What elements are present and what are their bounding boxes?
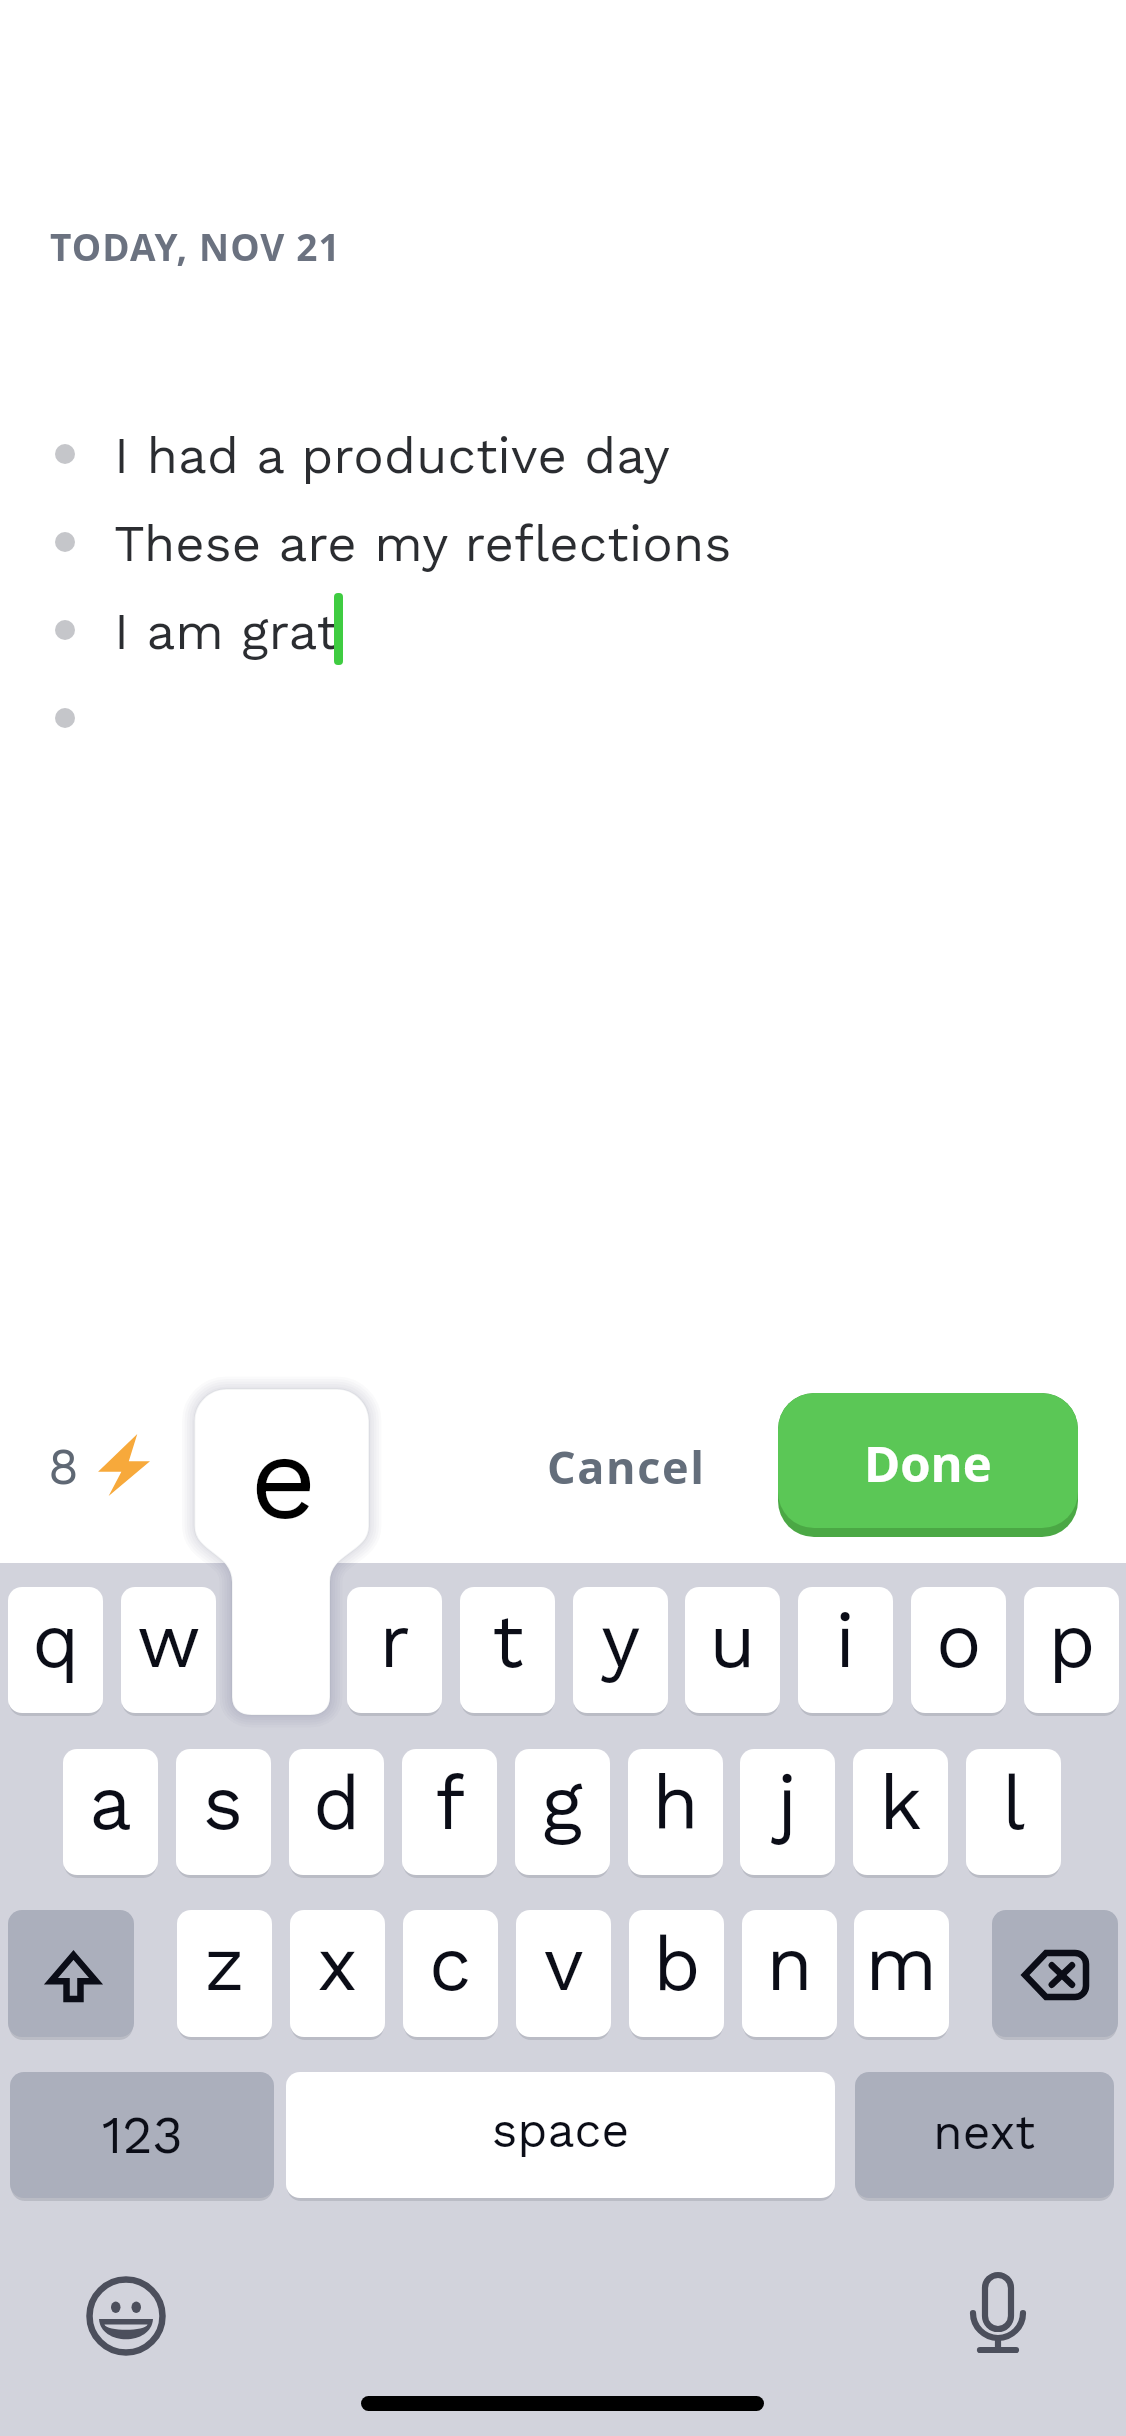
staticText: d — [313, 1758, 361, 1847]
staticText: 8 — [48, 1437, 79, 1496]
button[interactable]: v — [516, 1910, 611, 2037]
staticText: b — [653, 1919, 701, 2008]
other: Shift — [51, 1955, 96, 1999]
staticText: x — [317, 1919, 358, 2008]
button[interactable]: l — [966, 1749, 1061, 1875]
button[interactable]: next — [855, 2072, 1114, 2198]
other: Backspace — [1025, 1953, 1086, 1997]
staticText: t — [492, 1596, 524, 1685]
button[interactable]: Emoji — [66, 2256, 185, 2375]
staticText: f — [435, 1758, 465, 1847]
button[interactable]: c — [403, 1910, 498, 2037]
staticText: q — [32, 1596, 80, 1685]
button[interactable]: Cancel — [535, 1422, 718, 1511]
staticText: I am grat — [114, 602, 338, 662]
button[interactable]: w — [121, 1587, 216, 1713]
staticText: n — [766, 1919, 814, 2008]
button[interactable]: k — [853, 1749, 948, 1875]
button[interactable]: o — [911, 1587, 1006, 1713]
button[interactable]: space — [286, 2072, 835, 2198]
staticText: l — [1002, 1758, 1026, 1847]
button[interactable]: x — [290, 1910, 385, 2037]
button[interactable]: s — [176, 1749, 271, 1875]
button[interactable]: t — [460, 1587, 555, 1713]
button[interactable]: r — [347, 1587, 442, 1713]
staticText: a — [89, 1758, 133, 1847]
button[interactable]: g — [515, 1749, 610, 1875]
button[interactable]: d — [289, 1749, 384, 1875]
staticText: h — [652, 1758, 700, 1847]
button[interactable]: b — [629, 1910, 724, 2037]
staticText: p — [1048, 1596, 1096, 1685]
button[interactable]: u — [685, 1587, 780, 1713]
staticText: Cancel — [547, 1436, 706, 1497]
staticText: y — [601, 1596, 641, 1685]
button[interactable]: a — [63, 1749, 158, 1875]
staticText: u — [709, 1596, 756, 1685]
button[interactable]: y — [573, 1587, 668, 1713]
button[interactable]: f — [402, 1749, 497, 1875]
button[interactable]: h — [628, 1749, 723, 1875]
staticText: i — [835, 1596, 856, 1685]
staticText: c — [429, 1919, 472, 2008]
button[interactable]: q — [8, 1587, 103, 1713]
button[interactable]: Done — [778, 1393, 1078, 1537]
staticText: m — [865, 1919, 938, 2008]
staticText: v — [544, 1919, 584, 2008]
button[interactable]: Voice input — [939, 2256, 1058, 2375]
staticText: I had a productive day — [114, 426, 670, 486]
staticText: 123 — [102, 2105, 183, 2166]
button[interactable]: p — [1024, 1587, 1119, 1713]
staticText: z — [204, 1919, 245, 2008]
button[interactable]: i — [798, 1587, 893, 1713]
staticText: o — [936, 1596, 982, 1685]
staticText: TODAY, NOV 21 — [50, 221, 341, 271]
button[interactable]: 123 — [10, 2072, 274, 2198]
button[interactable]: n — [742, 1910, 837, 2037]
staticText: r — [379, 1596, 411, 1685]
staticText: Done — [864, 1430, 992, 1497]
staticText: These are my reflections — [114, 514, 732, 574]
button[interactable]: m — [854, 1910, 949, 2037]
staticText: g — [542, 1758, 583, 1847]
staticText: s — [203, 1758, 244, 1847]
staticText: space — [492, 2102, 630, 2158]
staticText: j — [777, 1758, 798, 1847]
button[interactable]: j — [740, 1749, 835, 1875]
button[interactable]: Shift — [8, 1910, 134, 2037]
staticText: e — [250, 1410, 317, 1546]
staticText: w — [137, 1596, 201, 1685]
staticText: next — [933, 2104, 1036, 2160]
button[interactable]: z — [177, 1910, 272, 2037]
button[interactable]: Streak 8 — [40, 1428, 160, 1504]
button[interactable]: Backspace — [992, 1910, 1118, 2037]
staticText: k — [879, 1758, 923, 1847]
